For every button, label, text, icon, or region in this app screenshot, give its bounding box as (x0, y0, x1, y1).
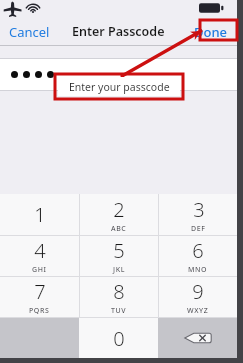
button[interactable]: 9 (159, 277, 237, 317)
staticText: 8 (113, 278, 125, 305)
staticText: GHI (32, 265, 47, 275)
staticText: Enter your passcode (69, 80, 170, 94)
staticText: TUV (111, 306, 127, 316)
staticText: 0 (113, 325, 125, 352)
button[interactable]: 8 (80, 277, 158, 317)
button[interactable]: 0 (79, 318, 158, 358)
button[interactable]: 5 (80, 236, 158, 276)
button[interactable] (0, 59, 237, 90)
staticText: 3 (193, 196, 205, 223)
staticText: MNO (188, 265, 208, 275)
staticText: JKL (113, 265, 125, 275)
staticText: 7 (34, 278, 46, 305)
staticText: Done (194, 23, 228, 41)
staticText: ABC (111, 224, 127, 234)
staticText: 9 (192, 278, 204, 305)
staticText: Cancel (9, 23, 50, 41)
button[interactable]: Done (190, 19, 232, 45)
button[interactable]: 2 (80, 194, 158, 235)
staticText: 1 (34, 201, 46, 228)
staticText: 5 (113, 237, 125, 264)
button[interactable]: Delete (158, 318, 237, 358)
staticText: 4 (34, 237, 46, 264)
staticText: Enter Passcode (72, 23, 165, 40)
staticText: WXYZ (187, 306, 209, 316)
staticText: PQRS (29, 306, 50, 316)
button[interactable]: 4 (0, 236, 79, 276)
staticText: DEF (191, 224, 206, 234)
button[interactable]: 3 (159, 194, 237, 235)
button[interactable]: 1 (0, 194, 79, 235)
button[interactable]: 7 (0, 277, 79, 317)
button[interactable]: Cancel (5, 19, 54, 45)
staticText: 2 (113, 196, 125, 223)
button[interactable]: 6 (159, 236, 237, 276)
staticText: 6 (192, 237, 204, 264)
